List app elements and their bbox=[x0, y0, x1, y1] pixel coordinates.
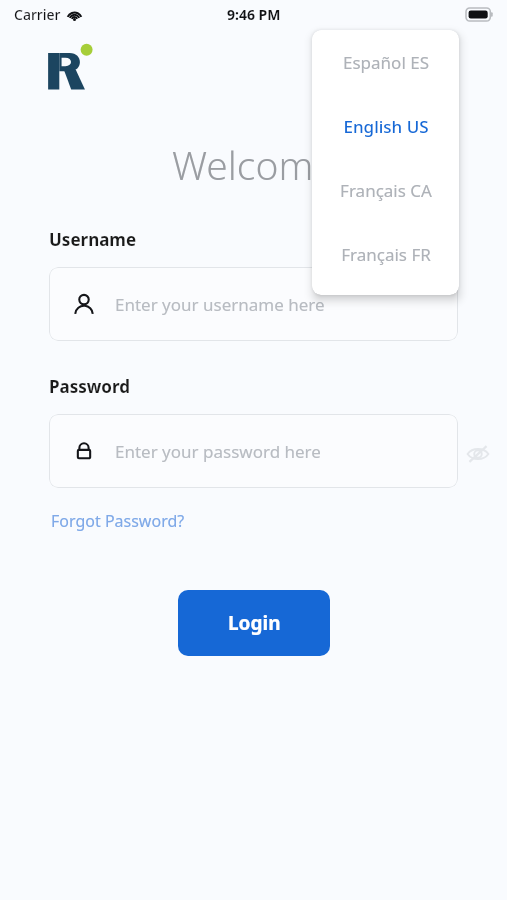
staticText: Carrier bbox=[14, 5, 61, 24]
staticText: Welcome bbox=[172, 138, 335, 191]
staticText: Enter your username here bbox=[115, 293, 325, 316]
other: App logo bbox=[45, 42, 97, 92]
button[interactable]: Login bbox=[178, 590, 330, 656]
button[interactable]: Enter your password here bbox=[49, 414, 458, 488]
staticText: Password bbox=[49, 375, 130, 398]
button[interactable]: Español ES bbox=[312, 30, 459, 94]
staticText: Français FR bbox=[341, 243, 431, 266]
staticText: Forgot Password? bbox=[51, 510, 185, 532]
button[interactable]: Forgot Password? bbox=[49, 507, 187, 535]
button[interactable]: English US bbox=[312, 94, 459, 158]
staticText: Français CA bbox=[340, 179, 432, 202]
staticText: Español ES bbox=[343, 51, 429, 74]
button[interactable]: Enter your username here bbox=[49, 267, 458, 341]
staticText: Username bbox=[49, 228, 137, 251]
staticText: 9:46 PM bbox=[227, 5, 281, 24]
staticText: English US bbox=[343, 115, 429, 138]
button[interactable]: Français FR bbox=[312, 222, 459, 286]
button[interactable]: Français CA bbox=[312, 158, 459, 222]
staticText: Enter your password here bbox=[115, 440, 321, 463]
button[interactable]: Show password bbox=[462, 438, 494, 470]
staticText: Login bbox=[228, 610, 281, 636]
